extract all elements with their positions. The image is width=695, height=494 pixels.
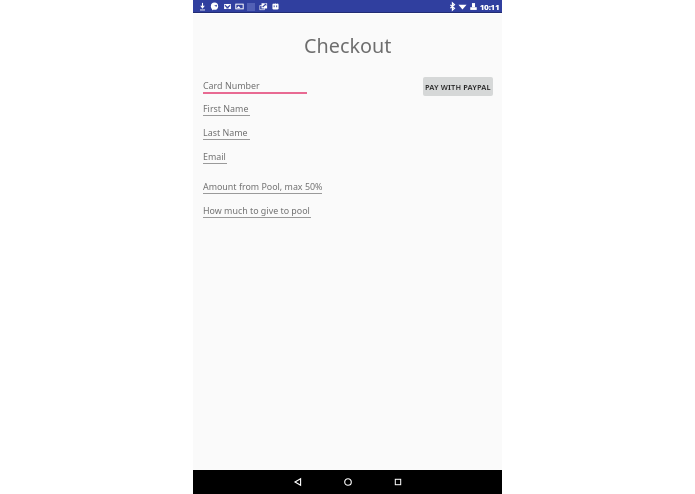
button[interactable]: How much to give to pool — [203, 204, 311, 218]
button[interactable]: Card Number — [203, 79, 307, 94]
button[interactable]: PAY WITH PAYPAL — [423, 77, 493, 96]
staticText: Card Number — [203, 79, 260, 91]
staticText: Email — [203, 150, 226, 162]
staticText: 10:11 — [480, 2, 500, 12]
button[interactable]: Home — [336, 470, 360, 494]
button[interactable]: Amount from Pool, max 50% — [203, 180, 322, 194]
button[interactable]: Last Name — [203, 126, 250, 140]
button[interactable]: First Name — [203, 102, 250, 116]
button[interactable]: Recent apps — [386, 470, 410, 494]
staticText: Last Name — [203, 126, 248, 138]
staticText: How much to give to pool — [203, 204, 310, 216]
button[interactable]: Email — [203, 150, 227, 164]
button[interactable]: Back — [286, 470, 310, 494]
staticText: First Name — [203, 102, 249, 114]
staticText: Amount from Pool, max 50% — [203, 180, 323, 192]
staticText: PAY WITH PAYPAL — [425, 82, 491, 92]
staticText: Checkout — [304, 32, 392, 59]
